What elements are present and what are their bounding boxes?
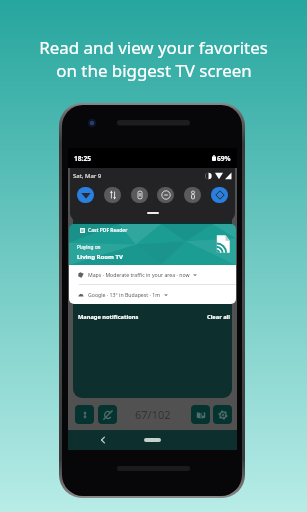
button[interactable]: Night mode [98, 405, 117, 424]
button[interactable]: Maps · Moderate traffic in your area · n… [78, 265, 230, 284]
button[interactable]: Bookmarks [191, 405, 210, 424]
staticText: Playing on [77, 244, 101, 251]
button[interactable]: Mobile data [104, 187, 121, 203]
staticText: Maps · Moderate traffic in your area · n… [88, 271, 190, 278]
button[interactable]: Battery saver [131, 187, 148, 203]
staticText: 67/102 [135, 407, 171, 422]
button[interactable]: Google · 13° in Budapest · 1m [78, 285, 230, 304]
staticText: Read and view your favorites [39, 36, 268, 59]
staticText: Google · 13° in Budapest · 1m [88, 291, 161, 298]
button[interactable]: More options [75, 405, 94, 424]
button[interactable]: Manage notifications [78, 313, 139, 321]
button[interactable]: Back [97, 434, 109, 446]
staticText: Cast PDF Reader [88, 227, 128, 234]
staticText: Manage notifications [78, 313, 139, 321]
button[interactable]: Flashlight [184, 187, 201, 203]
button[interactable]: Wi-Fi [77, 187, 94, 203]
button[interactable]: Clear all [207, 313, 230, 321]
staticText: on the biggest TV screen [56, 59, 252, 82]
button[interactable]: Auto rotate [211, 187, 228, 203]
button[interactable]: Cast PDF Reader, playing on Living Room … [69, 224, 236, 265]
staticText: 69% [217, 154, 231, 163]
button[interactable]: Settings [213, 405, 232, 424]
staticText: 18:25 [74, 154, 91, 163]
staticText: Clear all [207, 313, 230, 321]
button[interactable]: Do not disturb [157, 187, 174, 203]
staticText: Sat, Mar 9 [73, 172, 102, 180]
staticText: Living Room TV [77, 253, 123, 261]
